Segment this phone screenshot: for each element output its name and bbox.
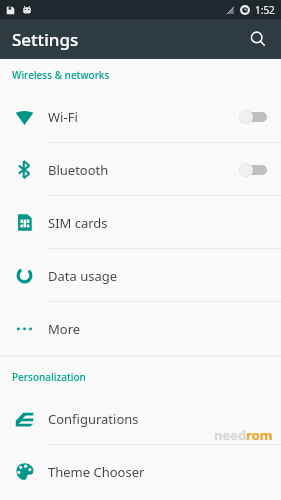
staticText: need xyxy=(213,426,246,444)
staticText: Data usage xyxy=(48,267,281,285)
staticText: Theme Chooser xyxy=(48,463,281,481)
staticText: Personalization xyxy=(12,370,86,384)
staticText: Settings xyxy=(12,28,79,51)
staticText: SIM cards xyxy=(48,214,281,232)
button[interactable]: Configurations xyxy=(0,392,281,445)
button[interactable]: Bluetooth xyxy=(0,143,281,196)
button[interactable]: Theme Chooser xyxy=(0,445,281,498)
button[interactable]: SIM cards xyxy=(0,196,281,249)
staticText: 1:52 xyxy=(255,3,275,17)
staticText: Wireless & networks xyxy=(12,68,110,82)
staticText: needrom xyxy=(214,426,273,444)
staticText: rom xyxy=(246,426,273,444)
button[interactable]: Data usage xyxy=(0,249,281,302)
staticText: Wi-Fi xyxy=(48,108,239,126)
staticText: More xyxy=(48,320,281,338)
staticText: Configurations xyxy=(48,410,281,428)
button[interactable]: Wi-Fi xyxy=(0,90,281,143)
staticText: Bluetooth xyxy=(48,161,239,179)
button[interactable]: Search xyxy=(239,20,277,58)
button[interactable]: More xyxy=(0,302,281,355)
